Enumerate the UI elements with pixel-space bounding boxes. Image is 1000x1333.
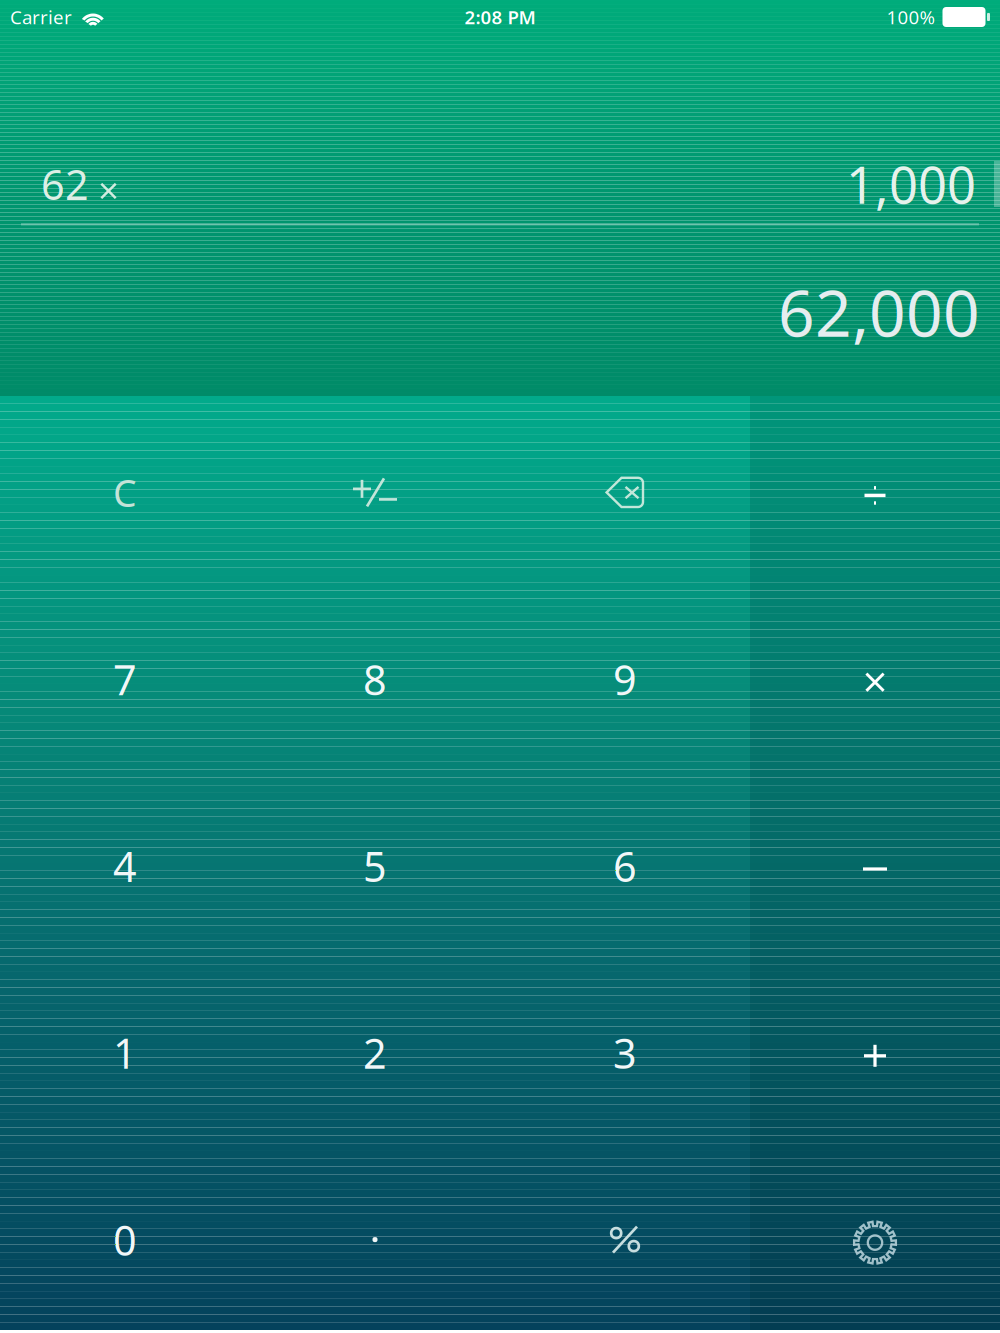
button[interactable]: Multiply <box>750 589 1000 776</box>
staticText: 2:08 PM <box>464 5 535 29</box>
button[interactable]: 1 <box>0 959 250 1146</box>
button[interactable]: 0 <box>0 1146 250 1333</box>
button[interactable]: +/- <box>250 399 500 586</box>
button[interactable]: % <box>500 1146 750 1333</box>
staticText: 6 <box>613 839 637 893</box>
staticText: 3 <box>613 1025 637 1080</box>
button[interactable]: 7 <box>0 586 250 773</box>
staticText: 100% <box>886 5 935 29</box>
staticText: 62 <box>41 157 89 211</box>
staticText: 1,000 <box>846 150 976 218</box>
button[interactable]: C <box>0 399 250 586</box>
staticText: 4 <box>113 839 137 893</box>
button[interactable]: 5 <box>250 773 500 959</box>
button[interactable]: 3 <box>500 959 750 1146</box>
button[interactable]: Delete <box>500 399 750 586</box>
staticText: 2 <box>363 1025 387 1080</box>
button[interactable]: Add <box>750 962 1000 1149</box>
button[interactable]: Subtract <box>750 776 1000 962</box>
staticText: 9 <box>613 652 637 707</box>
staticText: 7 <box>113 652 137 707</box>
staticText: 8 <box>363 652 387 707</box>
staticText: C <box>113 468 137 517</box>
button[interactable]: Settings <box>750 1149 1000 1333</box>
button[interactable]: Divide <box>750 402 1000 589</box>
button[interactable]: 6 <box>500 773 750 959</box>
button[interactable]: . <box>250 1146 500 1333</box>
button[interactable]: 8 <box>250 586 500 773</box>
button[interactable]: 2 <box>250 959 500 1146</box>
staticText: 5 <box>363 839 387 893</box>
staticText: 1 <box>113 1025 137 1080</box>
button[interactable]: 9 <box>500 586 750 773</box>
staticText: Carrier <box>10 5 72 29</box>
button[interactable]: 4 <box>0 773 250 959</box>
staticText: 62,000 <box>778 269 980 354</box>
staticText: 0 <box>113 1212 137 1267</box>
